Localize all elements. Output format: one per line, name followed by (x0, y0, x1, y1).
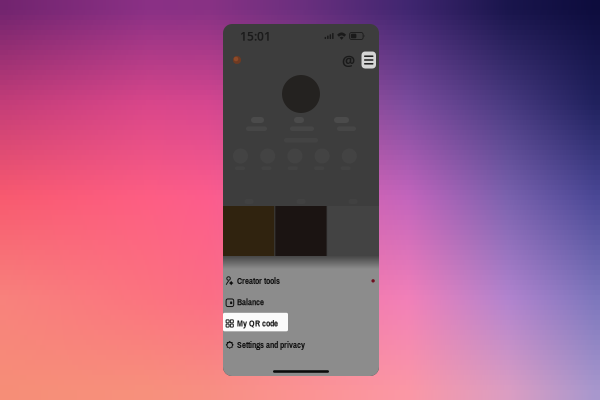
button[interactable]: My QR code (223, 313, 379, 334)
staticText: Creator tools (237, 275, 280, 287)
staticText: Balance (237, 296, 264, 308)
button[interactable]: Account (231, 54, 243, 66)
button[interactable]: Creator tools (223, 270, 379, 291)
button[interactable]: Settings and privacy (223, 334, 379, 355)
button[interactable]: Threads (342, 53, 354, 67)
button[interactable]: Balance (223, 291, 379, 313)
staticText: My QR code (237, 318, 278, 329)
staticText: 15:01 (240, 28, 271, 44)
staticText: @ (342, 50, 355, 70)
button[interactable]: Menu (361, 51, 376, 68)
staticText: Settings and privacy (237, 339, 305, 351)
